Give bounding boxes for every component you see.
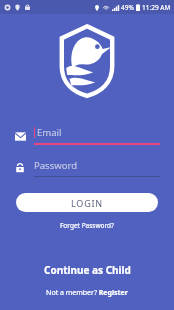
- staticText: LOGIN: [71, 197, 104, 209]
- button[interactable]: LOGIN: [16, 193, 158, 212]
- other: App logo: [61, 26, 113, 96]
- staticText: Forget Password?: [60, 221, 114, 230]
- staticText: 49%: [121, 3, 134, 12]
- staticText: 11:29 AM: [142, 3, 171, 12]
- other: Password: [14, 162, 26, 174]
- button[interactable]: Continue as Child: [0, 260, 174, 280]
- staticText: Password: [34, 159, 77, 172]
- button[interactable]: Password: [14, 159, 160, 177]
- staticText: Not a member? Register: [46, 288, 128, 298]
- button[interactable]: Forget Password?: [54, 219, 120, 232]
- other: Email: [14, 130, 26, 142]
- staticText: Email: [37, 126, 62, 139]
- button[interactable]: Not a member? Register: [0, 286, 174, 300]
- button[interactable]: Email: [14, 126, 160, 145]
- staticText: Continue as Child: [44, 263, 131, 277]
